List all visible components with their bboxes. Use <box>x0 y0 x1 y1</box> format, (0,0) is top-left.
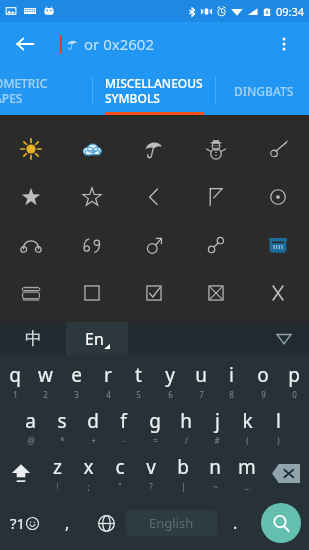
staticText: . <box>233 512 238 534</box>
staticText: ; <box>87 481 90 492</box>
button[interactable]: , <box>48 496 86 550</box>
button[interactable]: g <box>139 404 170 450</box>
button[interactable]: Back <box>8 27 42 61</box>
staticText: 4 <box>106 389 111 400</box>
staticText: ? <box>149 481 153 492</box>
button[interactable]: Shift <box>0 450 42 496</box>
button[interactable]: o <box>247 358 278 404</box>
button[interactable]: Symbol 11 <box>61 221 123 269</box>
button[interactable]: e <box>61 358 92 404</box>
button[interactable]: Symbol 14 <box>247 221 309 269</box>
staticText: 0 <box>292 389 297 400</box>
staticText: # <box>214 435 220 446</box>
staticText: d <box>87 408 99 434</box>
button[interactable]: c <box>104 450 135 496</box>
staticText: … <box>244 481 251 492</box>
button[interactable]: y <box>154 358 185 404</box>
staticText: t <box>135 362 142 388</box>
staticText: English <box>149 514 194 532</box>
staticText: w <box>38 362 53 388</box>
staticText: | <box>181 481 186 492</box>
button[interactable]: Symbol 5 <box>0 173 61 221</box>
button[interactable]: l <box>263 404 294 450</box>
staticText: or 0x2602 <box>84 34 155 54</box>
button[interactable]: Symbol 18 <box>185 269 247 317</box>
button[interactable]: 中 <box>0 322 66 355</box>
button[interactable]: Symbol 7 <box>123 173 185 221</box>
button[interactable]: m <box>231 450 263 496</box>
staticText: n <box>209 454 221 480</box>
button[interactable]: Symbol 12 <box>123 221 185 269</box>
staticText: ) <box>277 435 280 446</box>
button[interactable]: Symbol 8 <box>185 173 247 221</box>
button[interactable]: i <box>216 358 247 404</box>
button[interactable]: r <box>92 358 123 404</box>
button[interactable]: k <box>232 404 263 450</box>
button[interactable]: Symbol 3 <box>185 125 247 173</box>
button[interactable]: Symbol 13 <box>185 221 247 269</box>
button[interactable]: DINGBATS <box>216 66 309 115</box>
staticText: b <box>177 454 189 480</box>
button[interactable]: Symbol 0 <box>0 125 61 173</box>
button[interactable]: d <box>77 404 108 450</box>
staticText: y <box>165 362 175 388</box>
button[interactable]: Hide keyboard <box>128 322 309 355</box>
button[interactable]: z <box>42 450 73 496</box>
staticText: 8 <box>229 389 234 400</box>
button[interactable]: Symbol 19 <box>247 269 309 317</box>
button[interactable]: . <box>217 496 253 550</box>
button[interactable]: s <box>46 404 77 450</box>
button[interactable]: Symbol 16 <box>61 269 123 317</box>
button[interactable]: v <box>135 450 167 496</box>
button[interactable]: u <box>185 358 216 404</box>
staticText: 3 <box>74 389 79 400</box>
button[interactable]: a <box>15 404 46 450</box>
button[interactable]: Symbol 1 <box>61 125 123 173</box>
button[interactable]: Symbol 10 <box>0 221 61 269</box>
staticText: z <box>53 454 62 480</box>
staticText: h <box>180 408 192 434</box>
button[interactable]: Change language <box>86 496 126 550</box>
button[interactable]: English <box>126 510 217 536</box>
staticText: i <box>229 362 234 388</box>
button[interactable]: En <box>66 322 128 355</box>
button[interactable]: f <box>108 404 139 450</box>
staticText: 5 <box>136 389 141 400</box>
button[interactable]: w <box>30 358 61 404</box>
button[interactable]: x <box>73 450 104 496</box>
button[interactable]: Symbol 4 <box>247 125 309 173</box>
staticText: - <box>122 435 125 446</box>
staticText: @ <box>27 435 35 446</box>
button[interactable]: ?1 <box>0 496 48 550</box>
button[interactable]: or 0x2602 <box>60 29 155 59</box>
button[interactable]: More options <box>267 27 301 61</box>
staticText: 中 <box>25 328 42 349</box>
staticText: m <box>238 454 256 480</box>
button[interactable]: Symbol 6 <box>61 173 123 221</box>
button[interactable]: Search <box>261 503 301 543</box>
staticText: + <box>91 435 96 446</box>
button[interactable]: OMETRIC APES <box>0 66 92 115</box>
staticText: l <box>276 408 281 434</box>
button[interactable]: b <box>167 450 199 496</box>
staticText: En <box>85 328 104 350</box>
staticText: c <box>115 454 125 480</box>
staticText: u <box>195 362 207 388</box>
staticText: k <box>242 408 253 434</box>
button[interactable]: MISCELLANEOUS SYMBOLS <box>93 66 215 115</box>
staticText: ( <box>246 435 249 446</box>
staticText: ! <box>56 481 59 492</box>
button[interactable]: q <box>0 358 30 404</box>
button[interactable]: t <box>123 358 154 404</box>
button[interactable]: p <box>278 358 309 404</box>
button[interactable]: Backspace <box>263 450 309 496</box>
staticText: 09:34 <box>276 4 305 19</box>
staticText: p <box>288 362 300 388</box>
button[interactable]: j <box>201 404 232 450</box>
button[interactable]: Symbol 17 <box>123 269 185 317</box>
button[interactable]: Symbol 15 <box>0 269 61 317</box>
button[interactable]: n <box>199 450 231 496</box>
button[interactable]: Symbol 2 <box>123 125 185 173</box>
button[interactable]: Symbol 9 <box>247 173 309 221</box>
button[interactable]: h <box>170 404 201 450</box>
